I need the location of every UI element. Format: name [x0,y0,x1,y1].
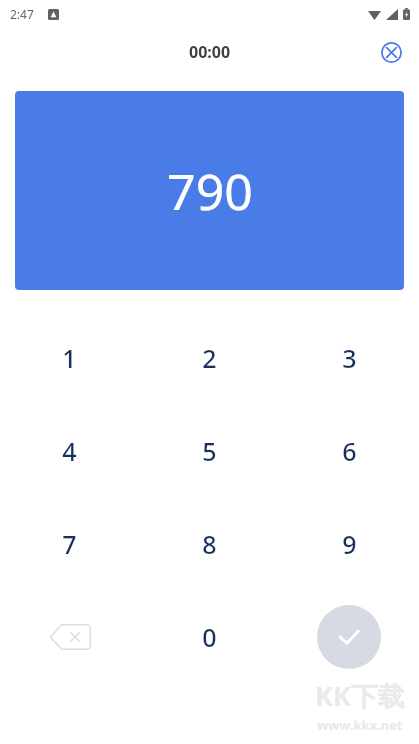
button[interactable]: 2 [139,311,279,404]
button[interactable]: 0 [139,590,279,683]
staticText: 00:00 [189,41,231,63]
button[interactable]: 4 [0,404,139,497]
button[interactable]: 1 [0,311,139,404]
staticText: 2 [202,341,217,375]
staticText: 3 [342,341,357,375]
staticText: 4 [62,434,77,468]
staticText: KK下载 [315,677,405,714]
staticText: 7 [62,527,77,561]
button[interactable]: 8 [139,497,279,590]
staticText: www.kkx.net [317,716,403,734]
button[interactable]: 9 [279,497,419,590]
staticText: 8 [202,527,217,561]
button[interactable]: Confirm [317,605,381,669]
staticText: 790 [167,157,253,225]
button[interactable]: 5 [139,404,279,497]
staticText: 2:47 [10,6,34,22]
staticText: 0 [202,620,217,654]
button[interactable]: Backspace [0,590,139,683]
staticText: 5 [202,434,217,468]
staticText: 1 [62,341,77,375]
button[interactable]: Close [371,32,411,72]
button[interactable]: 790 [15,91,404,290]
staticText: 6 [342,434,357,468]
button[interactable]: 6 [279,404,419,497]
button[interactable]: 3 [279,311,419,404]
staticText: 9 [342,527,357,561]
button[interactable]: 7 [0,497,139,590]
